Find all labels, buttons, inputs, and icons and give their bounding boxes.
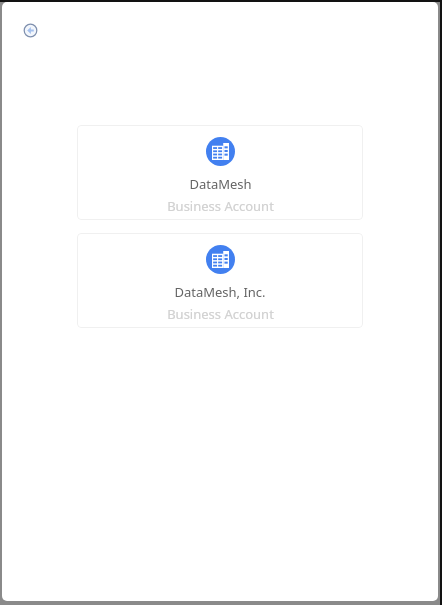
staticText: DataMesh, Inc.	[174, 283, 266, 301]
staticText: Business Account	[167, 305, 274, 323]
button[interactable]: DataMesh, Inc.	[77, 233, 363, 328]
staticText: Business Account	[167, 197, 274, 215]
button[interactable]: Back	[18, 18, 44, 44]
staticText: DataMesh	[189, 175, 252, 193]
button[interactable]: DataMesh	[77, 125, 363, 220]
